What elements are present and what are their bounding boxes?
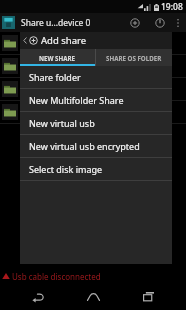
staticText: NEW SHARE bbox=[39, 54, 76, 62]
button[interactable]: Select disk image bbox=[20, 158, 172, 180]
button[interactable]: Home bbox=[76, 283, 110, 310]
button[interactable]: Share folder bbox=[20, 66, 172, 88]
staticText: New Multifolder Share bbox=[29, 94, 124, 106]
staticText: New virtual usb bbox=[29, 117, 95, 129]
button[interactable]: Up: Add share bbox=[20, 32, 172, 49]
button[interactable]: New virtual usb bbox=[20, 112, 172, 134]
staticText: New virtual usb encrypted bbox=[29, 140, 140, 152]
button[interactable]: Add share bbox=[126, 13, 144, 32]
staticText: Usb cable disconnected bbox=[12, 271, 101, 282]
button[interactable]: New virtual usb encrypted bbox=[20, 135, 172, 157]
staticText: 19:08 bbox=[161, 1, 183, 13]
staticText: Share u...device 0 bbox=[21, 17, 91, 29]
button[interactable]: More options bbox=[172, 13, 184, 32]
staticText: Select disk image bbox=[29, 163, 103, 175]
button[interactable]: Navigate up bbox=[2, 16, 15, 29]
button[interactable]: New Multifolder Share bbox=[20, 89, 172, 111]
staticText: Add share bbox=[41, 34, 87, 47]
staticText: Share folder bbox=[29, 71, 81, 83]
button[interactable]: Recent apps bbox=[131, 283, 165, 310]
button[interactable]: NEW SHARE bbox=[20, 49, 95, 66]
button[interactable]: SHARE OS FOLDER bbox=[96, 49, 172, 66]
button[interactable]: Power toggle bbox=[151, 13, 169, 32]
staticText: SHARE OS FOLDER bbox=[106, 54, 162, 62]
button[interactable]: Back bbox=[21, 283, 55, 310]
